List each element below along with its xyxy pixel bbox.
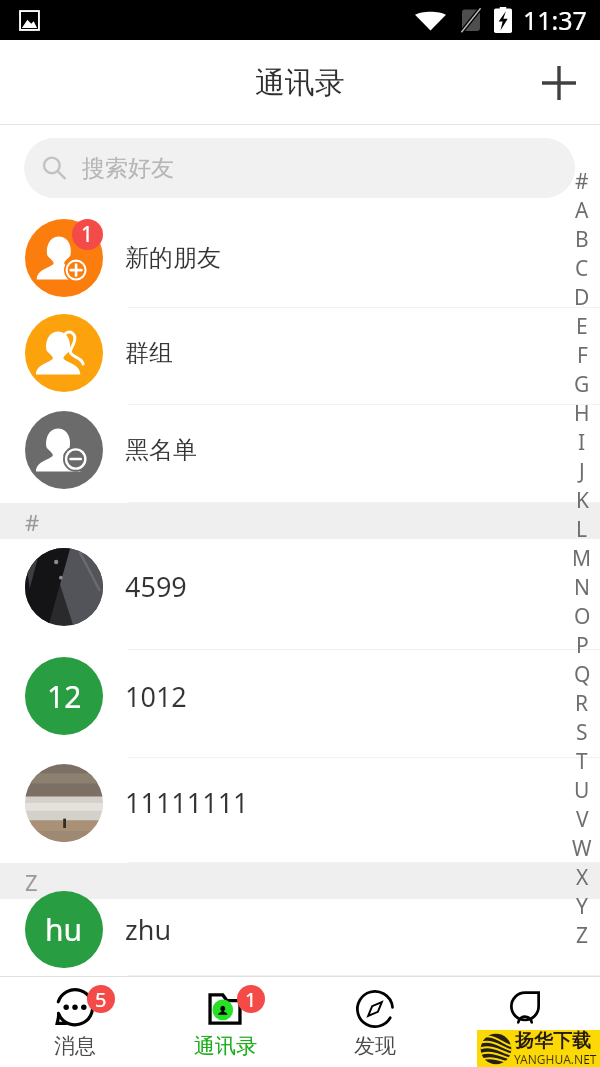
staticText: Z: [576, 921, 589, 950]
staticText: zhu: [125, 911, 172, 948]
button[interactable]: T: [564, 747, 600, 776]
button[interactable]: G: [564, 370, 600, 399]
staticText: M: [572, 544, 592, 573]
button[interactable]: M: [564, 544, 600, 573]
button[interactable]: Y: [564, 892, 600, 921]
button[interactable]: F: [564, 341, 600, 370]
button[interactable]: 1: [0, 211, 600, 308]
button[interactable]: E: [564, 312, 600, 341]
button[interactable]: S: [564, 718, 600, 747]
staticText: 群组: [125, 338, 173, 368]
staticText: 1: [245, 986, 257, 1013]
staticText: U: [574, 776, 590, 805]
staticText: 12: [47, 676, 82, 717]
staticText: N: [574, 573, 590, 602]
button[interactable]: I: [564, 428, 600, 457]
button[interactable]: K: [564, 486, 600, 515]
staticText: #: [575, 167, 589, 196]
button[interactable]: 发现: [300, 977, 450, 1067]
staticText: 通讯录: [194, 1033, 257, 1059]
staticText: I: [578, 428, 586, 457]
button[interactable]: U: [564, 776, 600, 805]
staticText: 1012: [125, 678, 187, 715]
staticText: 发现: [354, 1033, 396, 1059]
staticText: 5: [95, 986, 107, 1013]
button[interactable]: R: [564, 689, 600, 718]
button[interactable]: 5: [0, 977, 150, 1067]
button[interactable]: L: [564, 515, 600, 544]
staticText: 通讯录: [255, 64, 345, 102]
staticText: T: [576, 747, 588, 776]
staticText: 新的朋友: [125, 243, 221, 273]
button[interactable]: O: [564, 602, 600, 631]
staticText: 黑名单: [125, 435, 197, 465]
button[interactable]: P: [564, 631, 600, 660]
staticText: Z: [25, 867, 38, 897]
staticText: Y: [576, 892, 588, 921]
staticText: S: [576, 718, 588, 747]
staticText: P: [576, 631, 589, 660]
button[interactable]: 12: [0, 650, 600, 758]
staticText: G: [574, 370, 590, 399]
staticText: V: [576, 805, 589, 834]
button[interactable]: hu: [0, 899, 600, 976]
button[interactable]: 搜索好友: [24, 138, 575, 198]
button[interactable]: A: [564, 196, 600, 225]
staticText: F: [577, 341, 588, 370]
button[interactable]: 1: [150, 977, 300, 1067]
staticText: L: [576, 515, 588, 544]
button[interactable]: 群组: [0, 308, 600, 405]
staticText: O: [574, 602, 591, 631]
staticText: E: [576, 312, 588, 341]
button[interactable]: V: [564, 805, 600, 834]
staticText: 我: [515, 1033, 536, 1059]
button[interactable]: X: [564, 863, 600, 892]
button[interactable]: 黑名单: [0, 405, 600, 503]
staticText: 11:37: [523, 3, 587, 37]
staticText: R: [575, 689, 589, 718]
staticText: Q: [574, 660, 591, 689]
staticText: W: [572, 834, 592, 863]
button[interactable]: C: [564, 254, 600, 283]
button[interactable]: Z: [564, 921, 600, 950]
button[interactable]: #: [564, 167, 600, 196]
button[interactable]: 11111111: [0, 758, 600, 863]
staticText: 11111111: [125, 784, 249, 821]
button[interactable]: B: [564, 225, 600, 254]
staticText: 1: [81, 220, 94, 249]
button[interactable]: Q: [564, 660, 600, 689]
staticText: C: [575, 254, 589, 283]
button[interactable]: J: [564, 457, 600, 486]
button[interactable]: 我: [450, 977, 600, 1067]
staticText: J: [579, 457, 585, 486]
staticText: H: [574, 399, 590, 428]
staticText: #: [25, 507, 40, 537]
staticText: K: [576, 486, 589, 515]
staticText: 消息: [54, 1033, 96, 1059]
staticText: 搜索好友: [82, 154, 174, 183]
staticText: YANGHUA.NET: [514, 1051, 597, 1067]
button[interactable]: D: [564, 283, 600, 312]
button[interactable]: 4599: [0, 539, 600, 650]
button[interactable]: W: [564, 834, 600, 863]
button[interactable]: H: [564, 399, 600, 428]
staticText: D: [574, 283, 590, 312]
staticText: B: [575, 225, 589, 254]
staticText: 4599: [125, 568, 187, 605]
staticText: X: [576, 863, 589, 892]
button[interactable]: N: [564, 573, 600, 602]
button[interactable]: Add: [533, 57, 585, 109]
staticText: hu: [45, 909, 83, 950]
staticText: A: [575, 196, 589, 225]
staticText: 扬华下载: [515, 1029, 591, 1053]
